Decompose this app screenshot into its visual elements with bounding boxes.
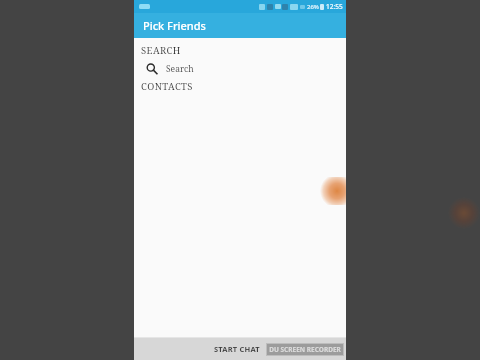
button[interactable]: Search xyxy=(134,60,346,78)
staticText: 26% xyxy=(307,3,319,11)
staticText: Search xyxy=(166,63,194,75)
other: Search xyxy=(146,63,158,75)
staticText: CONTACTS xyxy=(141,80,346,93)
staticText: SEARCH xyxy=(141,44,346,57)
staticText: DU SCREEN RECORDER xyxy=(269,345,341,354)
staticText: Pick Friends xyxy=(143,18,206,33)
staticText: 12:55 xyxy=(326,2,343,11)
button[interactable]: START CHAT xyxy=(208,338,266,360)
staticText: START CHAT xyxy=(214,344,260,354)
